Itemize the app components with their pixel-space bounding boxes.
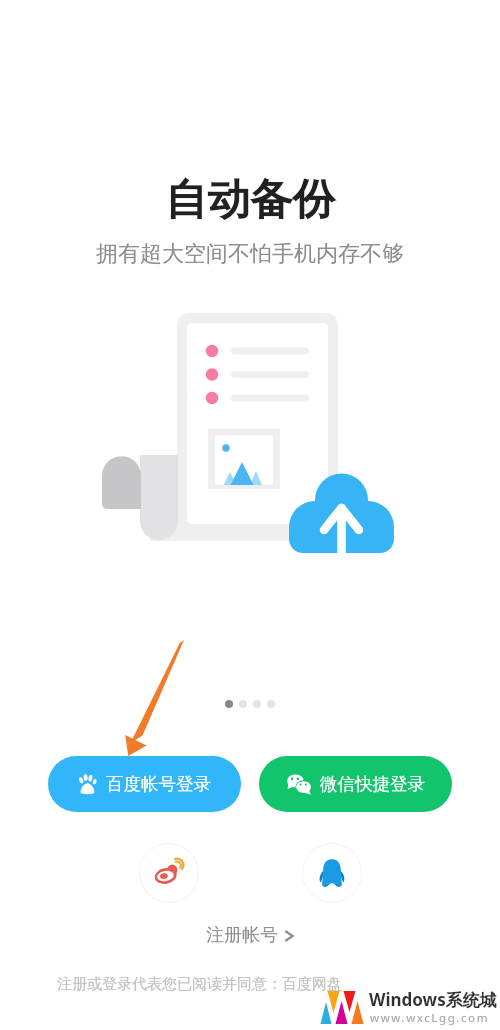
button[interactable]: Weibo login xyxy=(139,843,199,903)
staticText: Windows系统城 xyxy=(369,988,497,1011)
staticText: www.wxcLgg.com xyxy=(370,1010,490,1026)
button[interactable]: 微信快捷登录 xyxy=(259,756,452,812)
staticText: 注册帐号 xyxy=(206,924,278,947)
staticText: 自动备份 xyxy=(165,173,335,227)
button[interactable]: QQ login xyxy=(302,843,362,903)
staticText: 百度帐号登录 xyxy=(106,773,211,795)
button[interactable]: 百度帐号登录 xyxy=(48,756,241,812)
staticText: 微信快捷登录 xyxy=(320,773,425,795)
button[interactable]: 注册帐号 xyxy=(206,924,295,947)
staticText: 注册或登录代表您已阅读并同意：百度网盘 xyxy=(57,975,342,994)
staticText: 拥有超大空间不怕手机内存不够 xyxy=(96,240,404,268)
